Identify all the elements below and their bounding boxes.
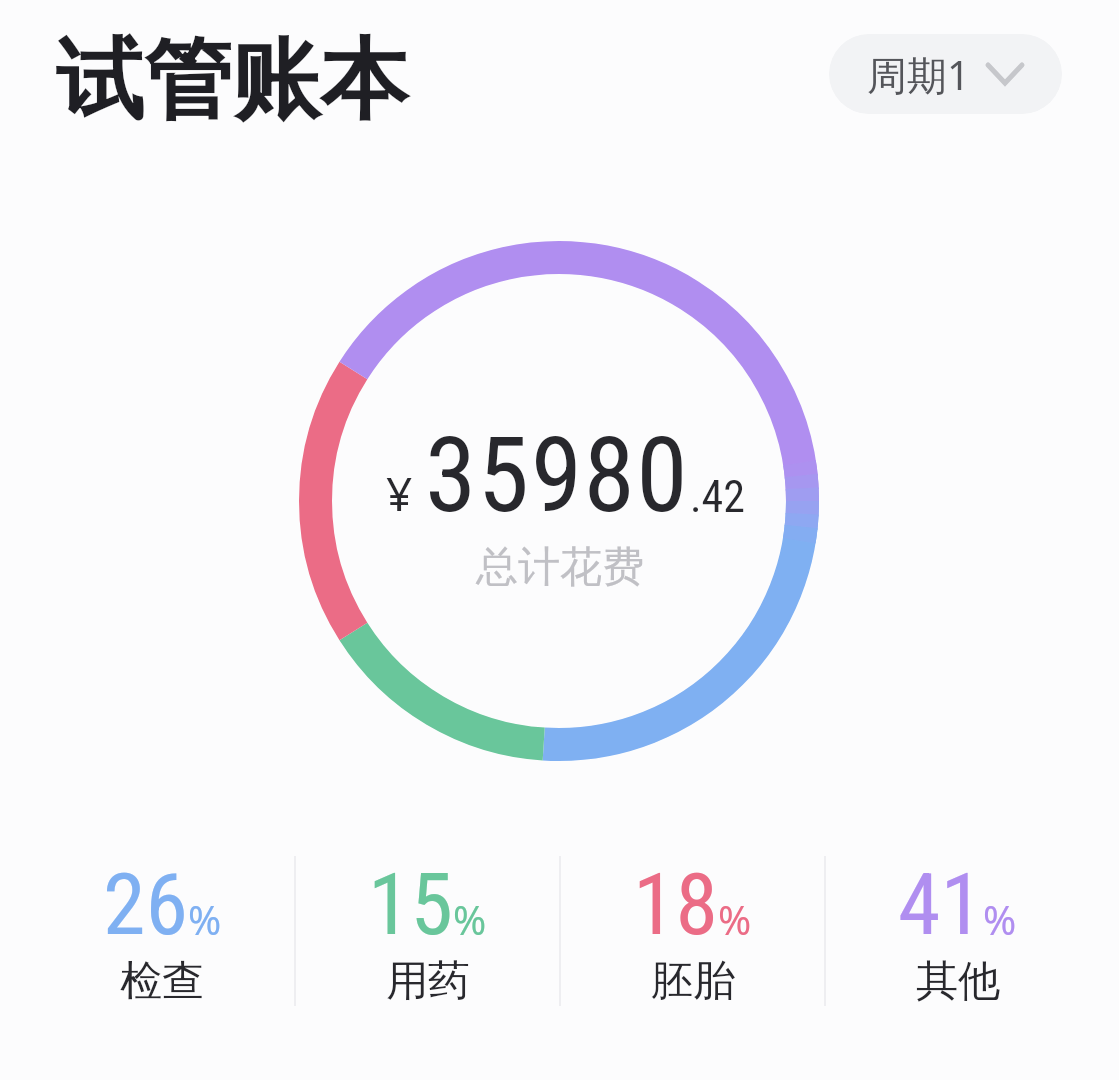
staticText: 检查 [120, 955, 204, 1008]
button[interactable]: 18 [561, 854, 824, 1008]
staticText: % [718, 892, 752, 946]
staticText: % [453, 892, 487, 946]
button[interactable]: 周期1 [829, 34, 1062, 114]
staticText: 18 [633, 854, 718, 955]
button[interactable]: 26 [30, 854, 294, 1008]
staticText: 35980 [425, 415, 690, 537]
button[interactable]: 41 [826, 854, 1089, 1008]
staticText: 41 [898, 854, 983, 955]
staticText: % [188, 892, 222, 946]
staticText: 用药 [386, 955, 470, 1008]
staticText: 26 [103, 854, 188, 955]
button[interactable]: 15 [296, 854, 559, 1008]
staticText: 胚胎 [651, 955, 735, 1008]
staticText: 周期1 [867, 47, 970, 102]
staticText: 15 [368, 854, 453, 955]
staticText: ¥ [386, 462, 413, 525]
staticText: 其他 [916, 955, 1000, 1008]
staticText: % [983, 892, 1017, 946]
staticText: 试管账本 [56, 25, 408, 136]
staticText: .42 [690, 471, 746, 523]
staticText: 总计花费 [476, 541, 644, 594]
